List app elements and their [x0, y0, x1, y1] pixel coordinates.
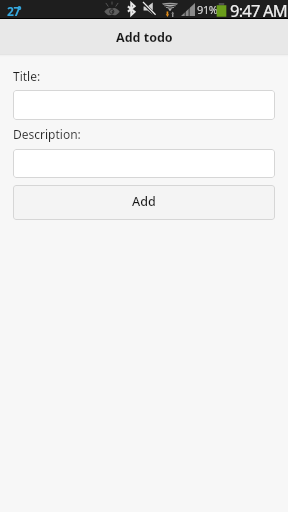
staticText: 27: [7, 3, 20, 19]
staticText: Title:: [13, 68, 41, 84]
button[interactable]: Title input field: [13, 90, 275, 120]
button[interactable]: Add: [13, 185, 275, 220]
staticText: Description:: [13, 126, 81, 142]
staticText: 91%: [197, 2, 218, 17]
button[interactable]: Description input field: [13, 149, 275, 178]
staticText: °: [17, 2, 22, 17]
staticText: Add: [132, 193, 156, 210]
staticText: 9:47 AM: [230, 0, 287, 18]
staticText: Add todo: [116, 29, 173, 46]
